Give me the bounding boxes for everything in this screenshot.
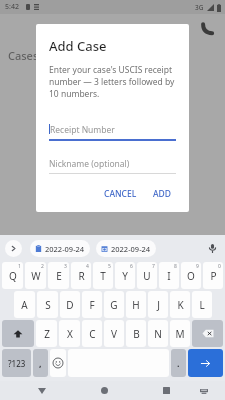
staticText: MG Law Group [74, 21, 152, 36]
staticText: 6 [130, 263, 133, 270]
button[interactable]: CANCEL [99, 185, 142, 203]
staticText: S [45, 298, 51, 312]
staticText: G [110, 298, 118, 312]
button[interactable]: L [192, 291, 212, 318]
staticText: Y [122, 269, 128, 283]
staticText: Add Case [49, 37, 107, 55]
staticText: D [66, 298, 74, 312]
button[interactable]: A [14, 291, 35, 318]
button[interactable]: Expand suggestions [5, 240, 22, 257]
staticText: Enter your case's USCIS receipt number —… [49, 64, 176, 100]
staticText: . [177, 357, 180, 369]
staticText: P [210, 269, 217, 283]
staticText: A [21, 298, 28, 312]
button[interactable]: Period [171, 349, 186, 377]
button[interactable]: J [148, 291, 168, 318]
staticText: ?123 [8, 358, 26, 369]
staticText: J [157, 298, 160, 312]
staticText: 9 [196, 263, 199, 270]
button[interactable]: W [25, 262, 46, 289]
staticText: X [67, 327, 73, 341]
staticText: 3 [64, 263, 67, 270]
staticText: C [89, 327, 96, 341]
staticText: I [167, 269, 171, 283]
button[interactable]: Symbols [2, 349, 31, 377]
button[interactable]: Comma [33, 349, 48, 377]
staticText: E [56, 269, 62, 283]
staticText: B [133, 327, 140, 341]
button[interactable]: Voice input [204, 240, 220, 256]
staticText: L [199, 298, 205, 312]
button[interactable]: N [148, 320, 168, 347]
staticText: 4 [86, 263, 89, 270]
staticText: 5:42 [5, 2, 19, 12]
button[interactable]: H [126, 291, 146, 318]
button[interactable]: Enter [188, 349, 223, 377]
button[interactable]: Shift [2, 320, 34, 347]
button[interactable]: Backspace [192, 320, 223, 347]
staticText: W [31, 269, 41, 283]
button[interactable]: ADD [148, 185, 176, 203]
button[interactable]: T [93, 262, 113, 289]
button[interactable]: Back [31, 381, 53, 400]
staticText: K [177, 298, 184, 312]
staticText: F [89, 298, 95, 312]
button[interactable]: M [170, 320, 190, 347]
staticText: ADD [153, 188, 171, 200]
button[interactable]: Z [36, 320, 57, 347]
button[interactable]: K [170, 291, 190, 318]
staticText: N [154, 327, 162, 341]
staticText: Cases [8, 48, 39, 63]
staticText: 7 [152, 263, 155, 270]
button[interactable]: Call [195, 16, 219, 40]
button[interactable]: Emoji [50, 349, 66, 377]
staticText: 0 [218, 263, 221, 270]
staticText: M [175, 327, 185, 341]
button[interactable]: G [104, 291, 124, 318]
staticText: V [111, 327, 117, 341]
staticText: T [100, 269, 106, 283]
staticText: Z [44, 327, 50, 341]
staticText: O [187, 269, 195, 283]
staticText: Receipt Number [50, 124, 115, 136]
button[interactable]: Nickname (optional) [49, 154, 176, 173]
button[interactable]: 2022-09-24 [30, 240, 90, 257]
button[interactable]: E [48, 262, 69, 289]
staticText: 2022-09-24 [111, 244, 151, 254]
button[interactable]: Switch keyboard [194, 381, 214, 400]
staticText: 5 [108, 263, 111, 270]
button[interactable]: F [82, 291, 102, 318]
staticText: U [143, 269, 151, 283]
button[interactable]: 2022-09-24 [96, 240, 156, 257]
staticText: R [78, 269, 85, 283]
button[interactable]: I [159, 262, 179, 289]
staticText: 1 [18, 263, 21, 270]
button[interactable]: P [203, 262, 223, 289]
button[interactable]: X [59, 320, 80, 347]
button[interactable]: S [37, 291, 58, 318]
button[interactable]: V [104, 320, 124, 347]
button[interactable]: C [82, 320, 102, 347]
staticText: 8 [174, 263, 177, 270]
button[interactable]: U [137, 262, 157, 289]
button[interactable]: D [60, 291, 80, 318]
staticText: 2 [41, 263, 44, 270]
button[interactable]: R [71, 262, 91, 289]
button[interactable]: B [126, 320, 146, 347]
button[interactable]: Q [2, 262, 23, 289]
staticText: 2022-09-24 [45, 244, 85, 254]
button[interactable]: Home [93, 381, 115, 400]
button[interactable]: Receipt Number [49, 120, 176, 139]
staticText: 3G [195, 3, 204, 12]
staticText: Q [9, 269, 17, 283]
button[interactable]: Y [115, 262, 135, 289]
staticText: CANCEL [104, 188, 137, 200]
staticText: H [132, 298, 140, 312]
staticText: , [39, 357, 42, 369]
button[interactable]: Recents [155, 381, 177, 400]
button[interactable]: O [181, 262, 201, 289]
staticText: Nickname (optional) [49, 158, 130, 170]
